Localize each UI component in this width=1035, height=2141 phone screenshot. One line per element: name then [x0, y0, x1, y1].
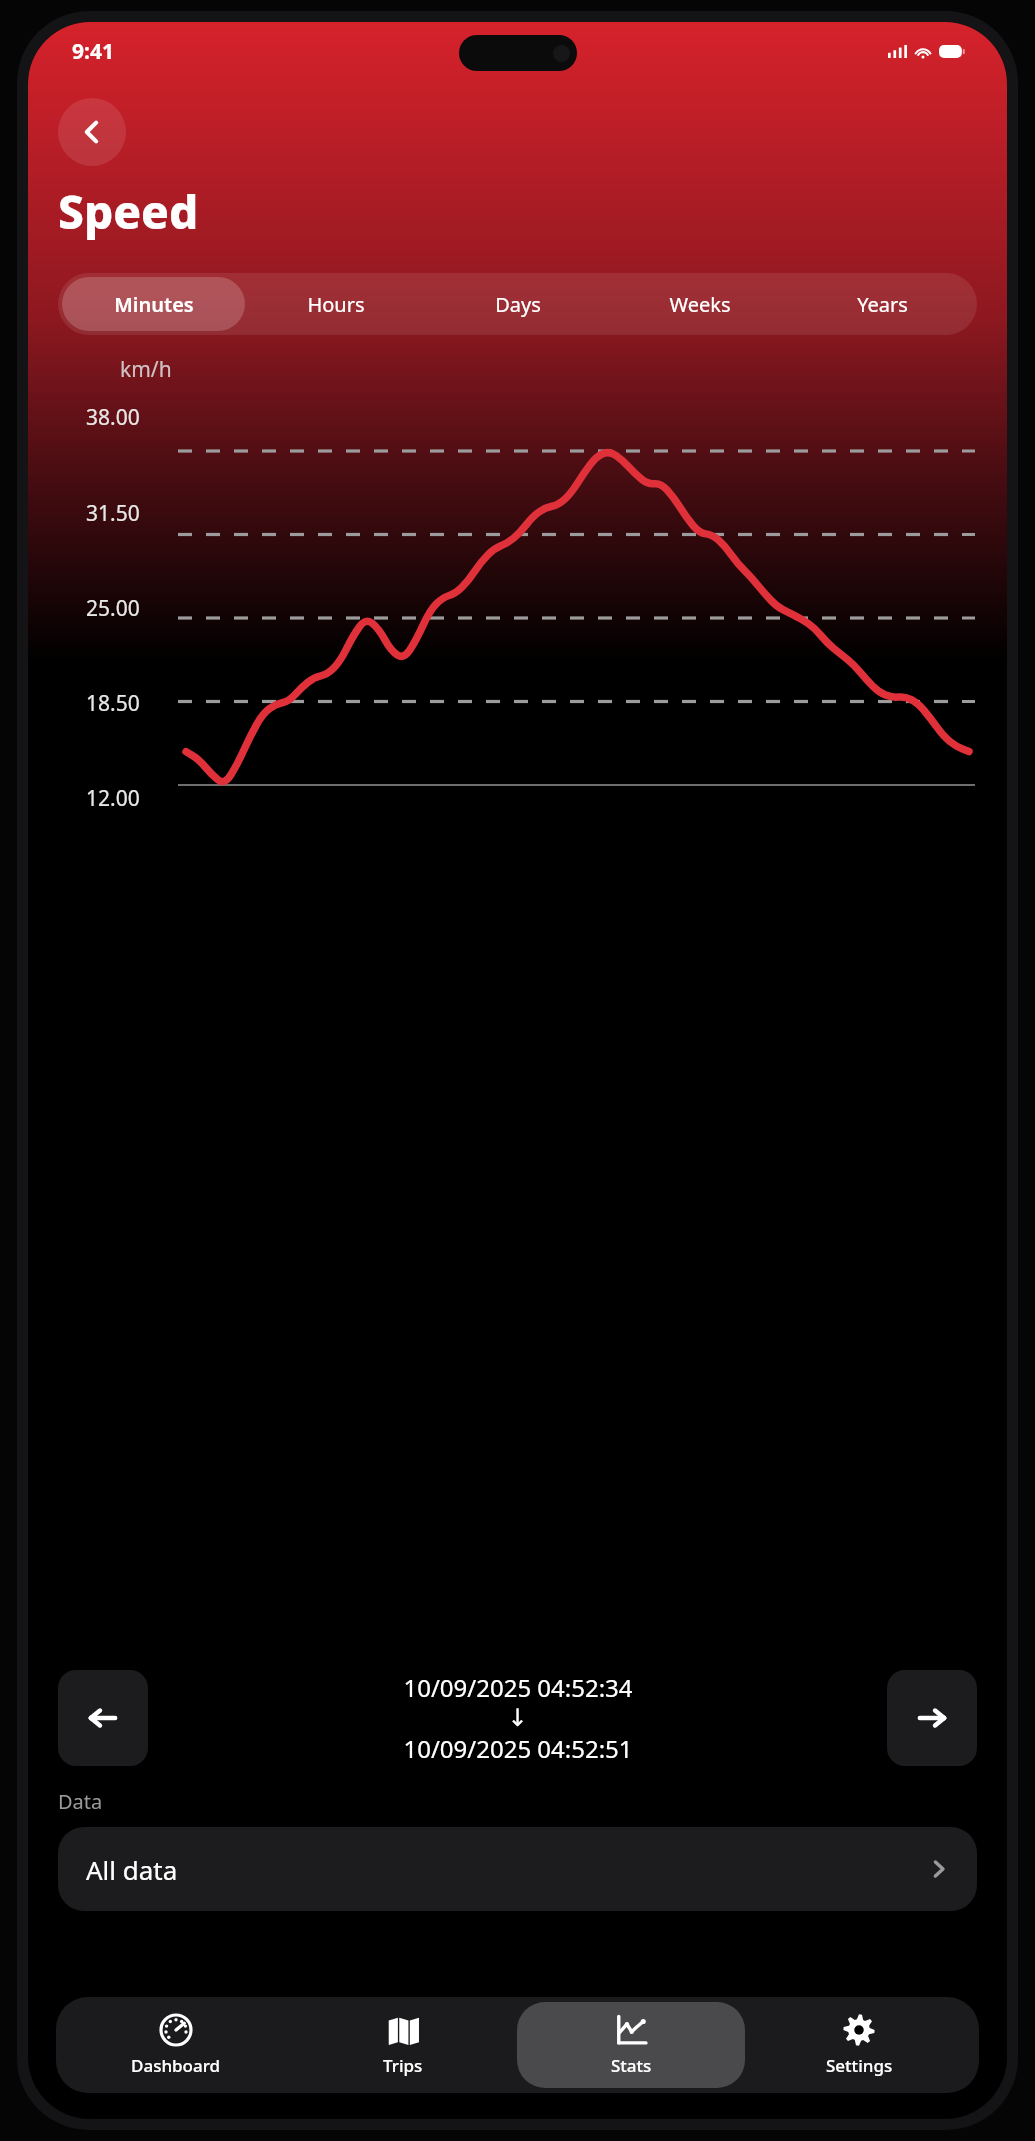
staticText: 38.00	[86, 403, 140, 432]
button[interactable]: Days	[427, 277, 609, 331]
button[interactable]: Previous range	[58, 1670, 148, 1766]
staticText: Speed	[58, 180, 199, 243]
staticText: 10/09/2025 04:52:51	[403, 1732, 633, 1765]
staticText: Dashboard	[131, 2054, 221, 2077]
button[interactable]: Dashboard	[62, 2002, 289, 2088]
staticText: Settings	[826, 2054, 893, 2077]
staticText: km/h	[120, 355, 172, 384]
staticText: Days	[495, 291, 541, 318]
staticText: Minutes	[114, 291, 194, 318]
button[interactable]: Years	[791, 277, 973, 331]
staticText: Data	[58, 1788, 103, 1815]
staticText: 10/09/2025 04:52:34	[403, 1671, 633, 1704]
staticText: 25.00	[86, 594, 140, 623]
button[interactable]: Stats	[517, 2002, 745, 2088]
staticText: Hours	[307, 291, 365, 318]
button[interactable]: Back	[58, 98, 126, 166]
button[interactable]: All data	[58, 1827, 977, 1911]
button[interactable]: Next range	[887, 1670, 977, 1766]
button[interactable]: Weeks	[609, 277, 791, 331]
staticText: Weeks	[669, 291, 731, 318]
staticText: 9:41	[72, 37, 114, 66]
staticText: 18.50	[86, 689, 140, 718]
staticText: 12.00	[86, 784, 140, 813]
button[interactable]: Minutes	[62, 277, 245, 331]
staticText: ↓	[507, 1704, 528, 1732]
staticText: Years	[857, 291, 908, 318]
staticText: Trips	[383, 2054, 423, 2077]
button[interactable]: Hours	[245, 277, 427, 331]
staticText: 31.50	[86, 499, 140, 528]
staticText: All data	[86, 1852, 929, 1887]
staticText: Stats	[611, 2054, 652, 2077]
button[interactable]: Settings	[745, 2002, 973, 2088]
button[interactable]: Trips	[289, 2002, 517, 2088]
